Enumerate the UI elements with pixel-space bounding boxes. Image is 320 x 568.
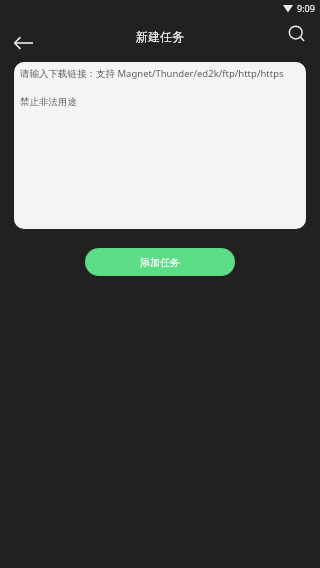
button[interactable]: 添加任务 (85, 248, 235, 276)
staticText: 添加任务 (140, 256, 180, 269)
button[interactable]: 请输入下载链接：支持 Magnet/Thunder/ed2k/ftp/http/… (14, 62, 306, 229)
staticText: 9:09 (297, 2, 315, 14)
staticText: 新建任务 (136, 29, 184, 44)
button[interactable]: Back (6, 26, 40, 60)
button[interactable]: Search (280, 17, 314, 51)
staticText: 禁止非法用途 (20, 96, 77, 108)
staticText: 请输入下载链接：支持 Magnet/Thunder/ed2k/ftp/http/… (20, 67, 284, 80)
